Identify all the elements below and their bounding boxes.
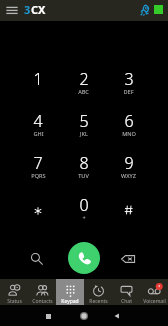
staticText: 2 — [79, 68, 89, 85]
staticText: DEF — [123, 88, 134, 96]
staticText: MNO — [122, 130, 136, 138]
button[interactable]: Menu — [3, 2, 21, 20]
button[interactable]: Recent apps — [41, 309, 55, 323]
staticText: 9 — [124, 152, 134, 169]
staticText: 8 — [79, 152, 89, 169]
staticText: Recents — [89, 298, 108, 305]
staticText: 5 — [79, 110, 89, 127]
staticText: PQRS — [31, 172, 46, 180]
button[interactable]: 7 — [15, 152, 61, 194]
button[interactable] — [15, 194, 61, 236]
staticText: 4 — [33, 110, 43, 127]
staticText: CX — [31, 2, 46, 17]
button[interactable]: 8 — [61, 152, 106, 194]
staticText: Status — [7, 298, 22, 305]
button[interactable]: 0 — [61, 194, 106, 236]
staticText: Voicemail — [143, 298, 166, 305]
staticText: GHI — [33, 130, 44, 138]
button[interactable]: Keypad — [56, 279, 84, 305]
staticText: 1 — [33, 68, 43, 85]
button[interactable]: 5 — [61, 110, 106, 152]
button[interactable]: 9 — [106, 152, 151, 194]
button[interactable]: Call — [68, 242, 100, 274]
button[interactable]: 3 — [106, 68, 151, 110]
staticText: 7 — [33, 152, 43, 169]
button[interactable]: 4 — [15, 110, 61, 152]
staticText: Chat — [121, 298, 132, 305]
button[interactable]: Home — [77, 309, 91, 323]
staticText: WXYZ — [121, 172, 136, 180]
button[interactable]: Backspace — [116, 247, 139, 270]
staticText: 0 — [79, 194, 89, 211]
staticText: ABC — [78, 88, 89, 96]
button[interactable]: Voicemail — [140, 279, 168, 305]
button[interactable]: Recents — [84, 279, 112, 305]
button[interactable]: Contacts — [28, 279, 56, 305]
button[interactable]: 1 — [15, 68, 61, 110]
button[interactable]: Chat — [112, 279, 140, 305]
staticText: 6 — [124, 110, 134, 127]
staticText: 3 — [124, 68, 134, 85]
button[interactable] — [106, 194, 151, 236]
button[interactable]: 6 — [106, 110, 151, 152]
button[interactable]: Back — [110, 309, 124, 323]
button[interactable]: Rocket — [136, 1, 154, 19]
staticText: + — [82, 214, 86, 222]
staticText: JKL — [80, 130, 88, 138]
button[interactable]: Search — [25, 247, 48, 270]
staticText: 3 — [24, 2, 31, 17]
staticText: Contacts — [32, 298, 53, 305]
button[interactable]: 2 — [61, 68, 106, 110]
button[interactable]: Status — [0, 279, 28, 305]
staticText: TUV — [78, 172, 89, 180]
staticText: Keypad — [61, 298, 79, 305]
